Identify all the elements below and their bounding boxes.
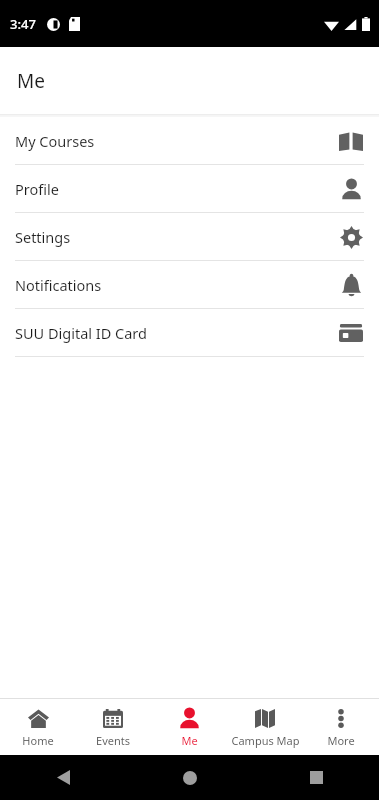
staticText: Profile xyxy=(15,179,338,199)
button[interactable]: Campus Map xyxy=(227,699,303,755)
staticText: Home xyxy=(22,733,54,748)
button[interactable]: My Courses xyxy=(0,117,379,164)
staticText: 3:47 xyxy=(10,15,36,33)
staticText: Me xyxy=(17,68,45,94)
staticText: Campus Map xyxy=(231,733,300,748)
button[interactable]: Settings xyxy=(0,213,379,260)
button[interactable]: Notifications xyxy=(0,261,379,308)
staticText: Settings xyxy=(15,227,338,247)
button[interactable]: Me xyxy=(151,699,227,755)
button[interactable]: Events xyxy=(75,699,151,755)
button[interactable]: Profile xyxy=(0,165,379,212)
staticText: More xyxy=(327,733,355,748)
staticText: SUU Digital ID Card xyxy=(15,323,338,343)
staticText: My Courses xyxy=(15,131,338,151)
button[interactable]: SUU Digital ID Card xyxy=(0,309,379,356)
button[interactable]: Home xyxy=(0,699,75,755)
staticText: Notifications xyxy=(15,275,338,295)
staticText: Me xyxy=(181,733,198,748)
button[interactable]: More xyxy=(303,699,379,755)
staticText: Events xyxy=(96,733,130,748)
